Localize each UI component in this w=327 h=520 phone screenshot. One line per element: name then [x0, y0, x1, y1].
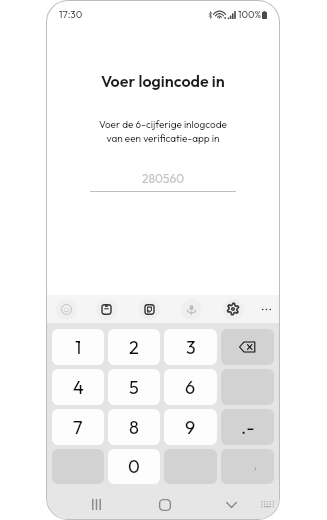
button[interactable]: Change keyboard [255, 484, 279, 518]
staticText: 4 [73, 376, 84, 399]
button[interactable] [221, 329, 274, 365]
staticText: 5 [129, 376, 139, 399]
staticText: , [254, 459, 257, 472]
staticText: 1 [75, 336, 82, 359]
button[interactable]: 5 [108, 369, 160, 405]
button[interactable]: 4 [52, 369, 104, 405]
button[interactable]: .- [221, 409, 274, 445]
button[interactable]: Keyboard settings [212, 295, 254, 323]
button[interactable]: 9 [164, 409, 217, 445]
button[interactable]: Emoji [47, 295, 85, 323]
staticText: 8 [129, 416, 139, 439]
button[interactable]: Home [131, 484, 198, 518]
staticText: 17:30 [59, 8, 83, 21]
button[interactable]: Clipboard [85, 295, 128, 323]
staticText: 7 [73, 416, 83, 439]
button[interactable]: Text stickers [128, 295, 170, 323]
staticText: Voer logincode in [101, 71, 225, 91]
button[interactable]: Recent apps [61, 484, 131, 518]
button[interactable]: Voice input [170, 295, 212, 323]
staticText: 9 [185, 416, 196, 439]
staticText: 0 [128, 455, 140, 478]
staticText: 280560 [142, 171, 185, 186]
button[interactable]: More options [254, 295, 279, 323]
staticText: 100% [238, 8, 262, 21]
staticText: Voer de 6-cijferige inlogcode van een ve… [99, 118, 227, 144]
button[interactable]: 2 [108, 329, 160, 365]
button[interactable]: 7 [52, 409, 104, 445]
button[interactable]: Hide keyboard [198, 484, 265, 518]
button[interactable]: 8 [108, 409, 160, 445]
staticText: .- [241, 416, 255, 439]
button[interactable]: 0 [108, 449, 160, 484]
button[interactable]: 3 [164, 329, 217, 365]
staticText: 2 [129, 336, 139, 359]
button[interactable]: 6 [164, 369, 217, 405]
staticText: 3 [186, 336, 196, 359]
button[interactable]: 1 [52, 329, 104, 365]
staticText: 6 [185, 376, 196, 399]
